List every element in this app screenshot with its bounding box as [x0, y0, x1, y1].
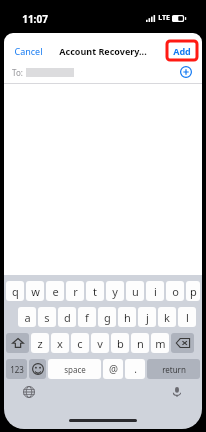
staticText: w [31, 284, 40, 299]
staticText: p [190, 284, 197, 299]
button[interactable]: l [178, 307, 196, 327]
staticText: f [85, 310, 89, 325]
staticText: a [24, 310, 31, 325]
staticText: Cancel [14, 45, 43, 57]
staticText: . [134, 362, 137, 376]
button[interactable]: h [118, 307, 136, 327]
button[interactable]: Cancel [11, 43, 46, 59]
button[interactable]: y [106, 281, 124, 301]
button[interactable]: g [98, 307, 116, 327]
staticText: b [117, 336, 124, 351]
staticText: k [164, 310, 170, 325]
button[interactable]: Backspace [171, 333, 194, 353]
staticText: y [112, 284, 118, 299]
staticText: c [77, 336, 83, 351]
staticText: g [104, 310, 111, 325]
button[interactable]: c [71, 333, 89, 353]
button[interactable]: e [46, 281, 64, 301]
button[interactable]: o [166, 281, 184, 301]
staticText: r [73, 284, 78, 299]
button[interactable]: @ [103, 359, 123, 379]
button[interactable]: d [58, 307, 76, 327]
staticText: @ [109, 362, 118, 376]
button[interactable]: Add contact [178, 64, 194, 80]
button[interactable]: f [78, 307, 96, 327]
button[interactable]: b [111, 333, 129, 353]
staticText: h [124, 310, 131, 325]
button[interactable]: Change keyboard [21, 384, 37, 400]
staticText: Add [173, 45, 191, 57]
button[interactable]: j [138, 307, 156, 327]
staticText: x [57, 336, 63, 351]
button[interactable]: k [158, 307, 176, 327]
button[interactable]: u [126, 281, 144, 301]
staticText: z [37, 336, 43, 351]
staticText: e [52, 284, 59, 299]
button[interactable]: a [18, 307, 36, 327]
button[interactable]: r [66, 281, 84, 301]
staticText: m [155, 336, 166, 351]
button[interactable]: n [131, 333, 149, 353]
button[interactable]: space [48, 359, 101, 379]
button[interactable]: v [91, 333, 109, 353]
button[interactable]: m [151, 333, 169, 353]
staticText: space [64, 364, 86, 375]
staticText: 11:07 [22, 12, 48, 26]
staticText: s [44, 310, 50, 325]
button[interactable]: p [186, 281, 200, 301]
staticText: return [162, 364, 186, 375]
button[interactable]: 123 [6, 359, 27, 379]
staticText: q [12, 284, 19, 299]
button[interactable]: q [6, 281, 24, 301]
staticText: n [137, 336, 144, 351]
staticText: t [93, 284, 97, 299]
button[interactable]: return [147, 359, 200, 379]
staticText: u [132, 284, 139, 299]
staticText: Account Recovery... [59, 45, 147, 57]
button[interactable]: Dictation [169, 384, 185, 400]
button[interactable]: t [86, 281, 104, 301]
button[interactable]: Shift [6, 333, 29, 353]
staticText: To: [12, 67, 23, 78]
staticText: v [97, 336, 103, 351]
button[interactable]: Add [170, 43, 194, 59]
button[interactable]: Emoji [29, 359, 46, 379]
button[interactable]: . [125, 359, 145, 379]
button[interactable]: w [26, 281, 44, 301]
button[interactable]: x [51, 333, 69, 353]
staticText: i [154, 284, 157, 299]
button[interactable]: s [38, 307, 56, 327]
staticText: o [172, 284, 179, 299]
staticText: 123 [10, 364, 24, 375]
staticText: j [146, 310, 149, 325]
staticText: LTE [158, 13, 170, 23]
button[interactable]: z [31, 333, 49, 353]
staticText: l [186, 310, 189, 325]
button[interactable]: i [146, 281, 164, 301]
staticText: d [64, 310, 71, 325]
